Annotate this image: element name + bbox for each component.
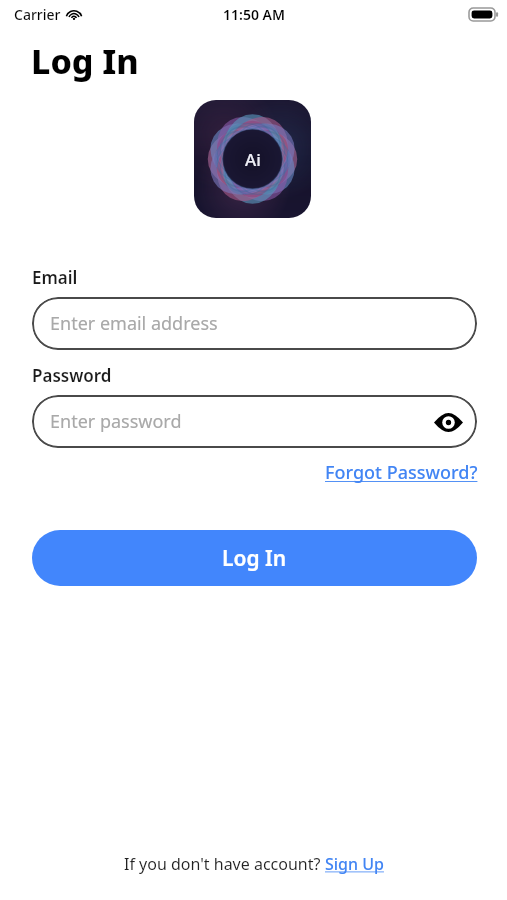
staticText: Enter email address <box>50 311 218 336</box>
staticText: 11:50 AM <box>223 5 285 24</box>
staticText: Log In <box>31 38 139 84</box>
button[interactable]: Forgot Password? <box>325 460 478 485</box>
staticText: Email <box>32 266 78 289</box>
staticText: Sign Up <box>325 853 384 875</box>
button[interactable]: Enter password <box>32 395 477 448</box>
staticText: Forgot Password? <box>325 460 478 485</box>
button[interactable]: Log In <box>32 530 477 586</box>
staticText: Ai <box>245 148 261 171</box>
button[interactable]: Sign Up <box>325 853 384 875</box>
staticText: Password <box>32 364 112 387</box>
staticText: Log In <box>222 544 287 573</box>
button[interactable]: Show password <box>429 403 467 441</box>
staticText: Carrier <box>14 5 61 24</box>
button[interactable]: Enter email address <box>32 297 477 350</box>
staticText: If you don't have account? <box>124 853 325 875</box>
staticText: Enter password <box>50 409 182 434</box>
